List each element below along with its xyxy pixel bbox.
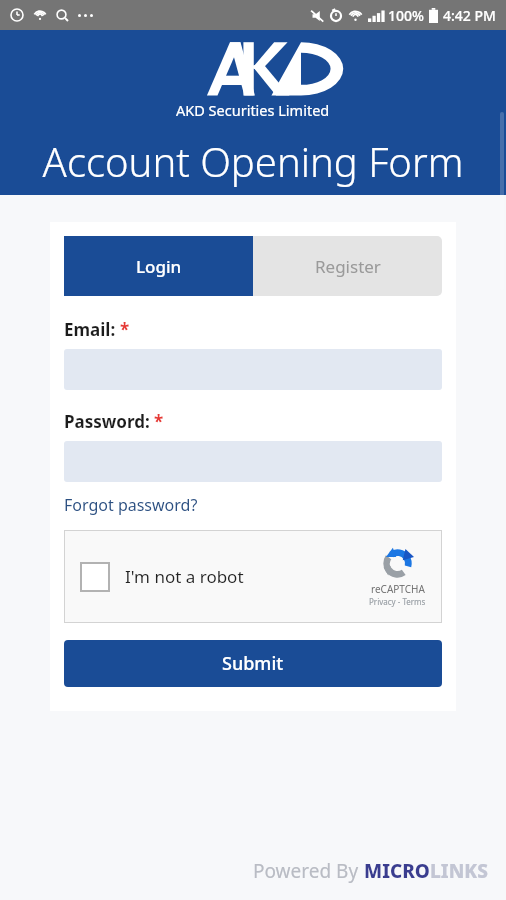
button[interactable]: I'm not a robot checkbox	[80, 562, 110, 592]
button[interactable]: Forgot password?	[64, 494, 198, 516]
staticText: Login	[136, 255, 182, 278]
button[interactable]: Submit	[64, 640, 442, 687]
staticText: *	[154, 410, 164, 433]
staticText: 100%	[388, 6, 424, 25]
staticText: 4:42 PM	[443, 6, 496, 25]
staticText: Privacy - Terms	[369, 596, 426, 607]
staticText: MICRO	[364, 858, 430, 884]
staticText: AKD Securities Limited	[176, 100, 330, 120]
staticText: reCAPTCHA	[371, 582, 425, 596]
staticText: Register	[315, 255, 381, 278]
staticText: LINKS	[430, 858, 488, 884]
button[interactable]: Login	[64, 236, 253, 296]
staticText: *	[120, 318, 130, 341]
staticText: Account Opening Form	[0, 134, 506, 188]
staticText: I'm not a robot	[125, 565, 244, 588]
staticText: Powered By	[253, 858, 364, 884]
staticText: Password:	[64, 410, 150, 433]
button[interactable]: Register	[253, 236, 442, 296]
staticText: Submit	[222, 651, 284, 676]
staticText: Email:	[64, 318, 116, 341]
